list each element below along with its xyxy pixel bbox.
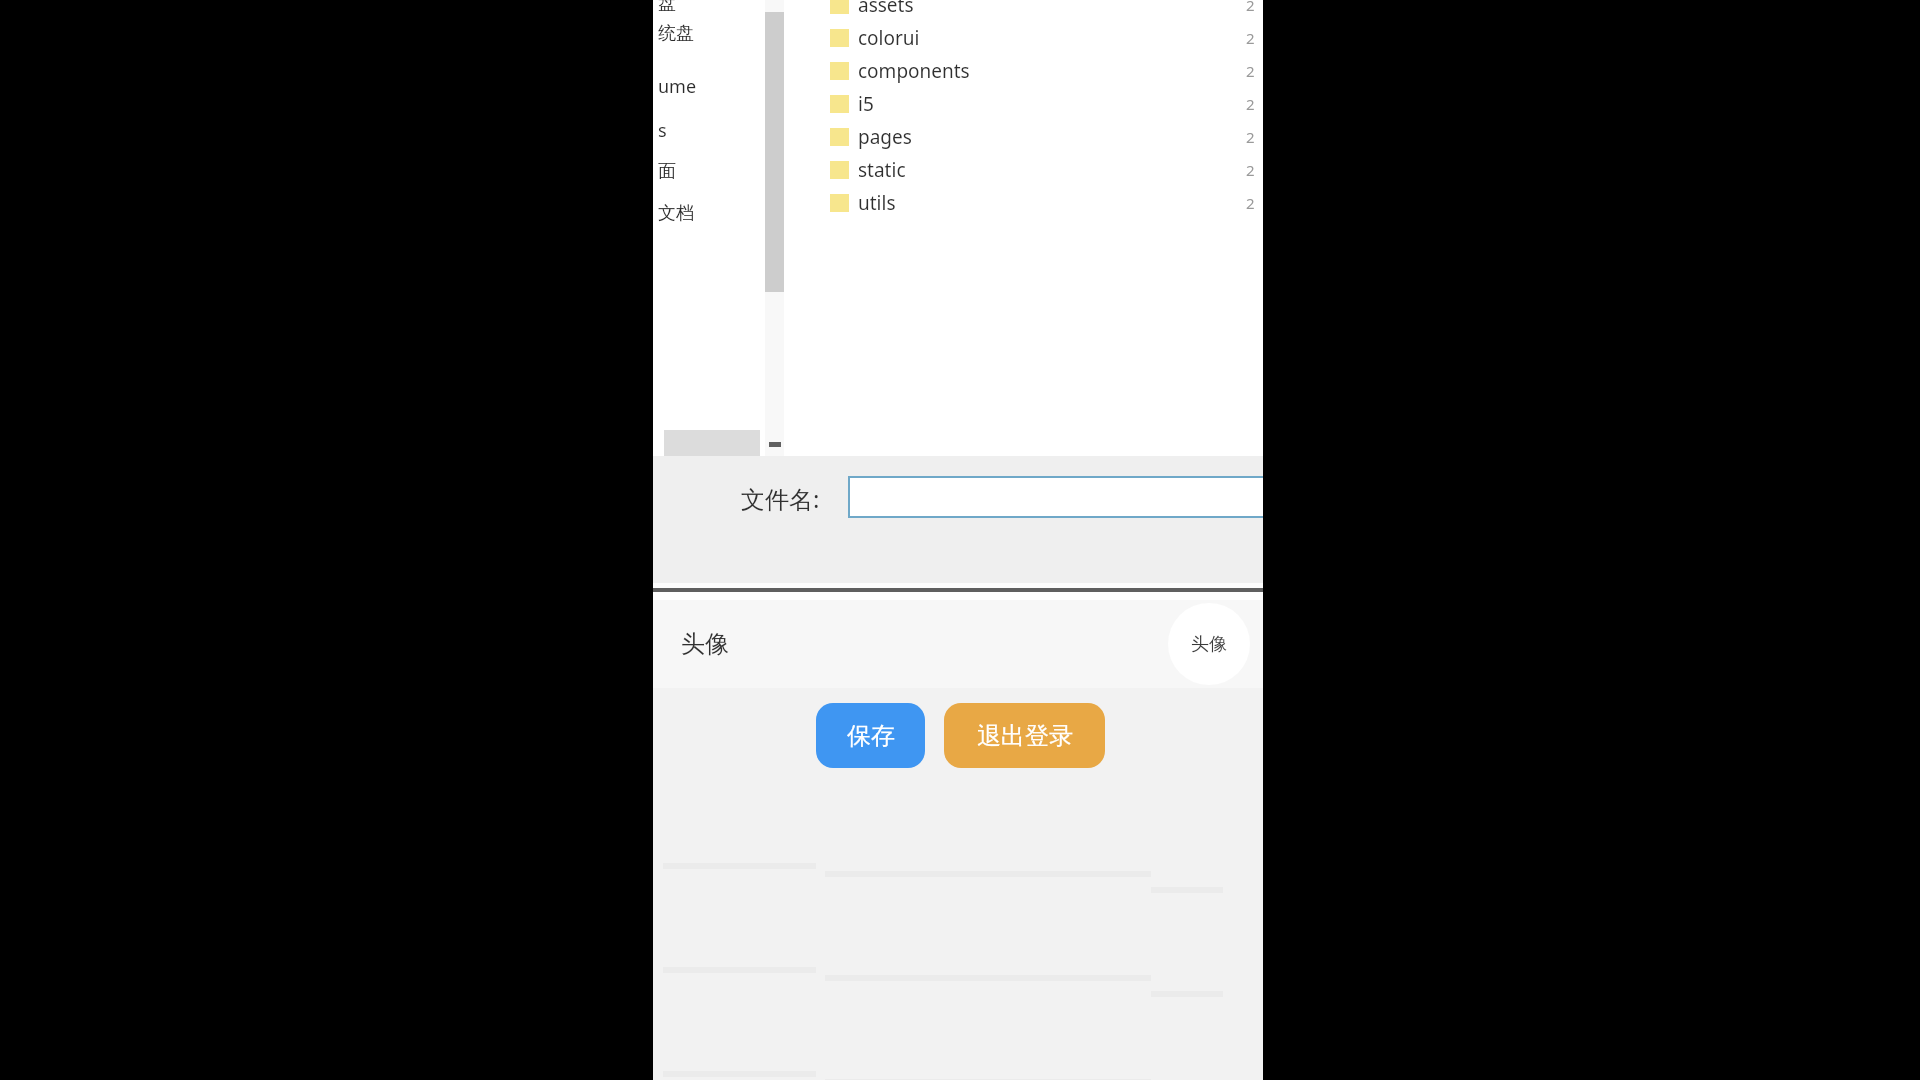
staticText: 2 xyxy=(1246,193,1255,213)
staticText: assets xyxy=(858,0,914,18)
button[interactable]: Change avatar xyxy=(1168,603,1250,685)
button[interactable]: 盘 xyxy=(658,0,676,14)
staticText: 盘 xyxy=(658,0,676,14)
staticText: 统盘 xyxy=(658,22,694,44)
button[interactable]: 退出登录 xyxy=(944,703,1105,768)
button[interactable]: 面 xyxy=(658,160,676,182)
staticText: pages xyxy=(858,124,912,150)
button[interactable]: 文档 xyxy=(658,202,694,224)
button[interactable]: 统盘 xyxy=(658,22,694,44)
button[interactable]: ume xyxy=(658,74,697,96)
button[interactable]: i5 xyxy=(784,87,1263,120)
staticText: 2 xyxy=(1246,160,1255,180)
staticText: 文档 xyxy=(658,202,694,224)
button[interactable]: assets xyxy=(784,0,1263,21)
staticText: 头像 xyxy=(1191,633,1227,656)
staticText: ume xyxy=(658,74,697,96)
staticText: 2 xyxy=(1246,0,1255,15)
staticText: components xyxy=(858,58,970,84)
staticText: 文件名: xyxy=(741,482,820,515)
staticText: 保存 xyxy=(847,721,895,751)
button[interactable]: static xyxy=(784,153,1263,186)
button[interactable]: 头像 xyxy=(653,600,1263,688)
staticText: 退出登录 xyxy=(977,721,1073,751)
button[interactable]: s xyxy=(658,118,667,140)
staticText: 2 xyxy=(1246,94,1255,114)
button[interactable]: colorui xyxy=(784,21,1263,54)
staticText: static xyxy=(858,157,906,183)
staticText: 头像 xyxy=(681,629,729,659)
button[interactable]: components xyxy=(784,54,1263,87)
staticText: i5 xyxy=(858,91,874,117)
staticText: utils xyxy=(858,190,896,216)
staticText: s xyxy=(658,118,667,140)
button[interactable]: pages xyxy=(784,120,1263,153)
button[interactable]: File name input xyxy=(848,476,1263,518)
staticText: colorui xyxy=(858,25,920,51)
staticText: 面 xyxy=(658,160,676,182)
button[interactable]: utils xyxy=(784,186,1263,219)
staticText: 2 xyxy=(1246,127,1255,147)
button[interactable]: 保存 xyxy=(816,703,925,768)
staticText: 2 xyxy=(1246,28,1255,48)
staticText: 2 xyxy=(1246,61,1255,81)
